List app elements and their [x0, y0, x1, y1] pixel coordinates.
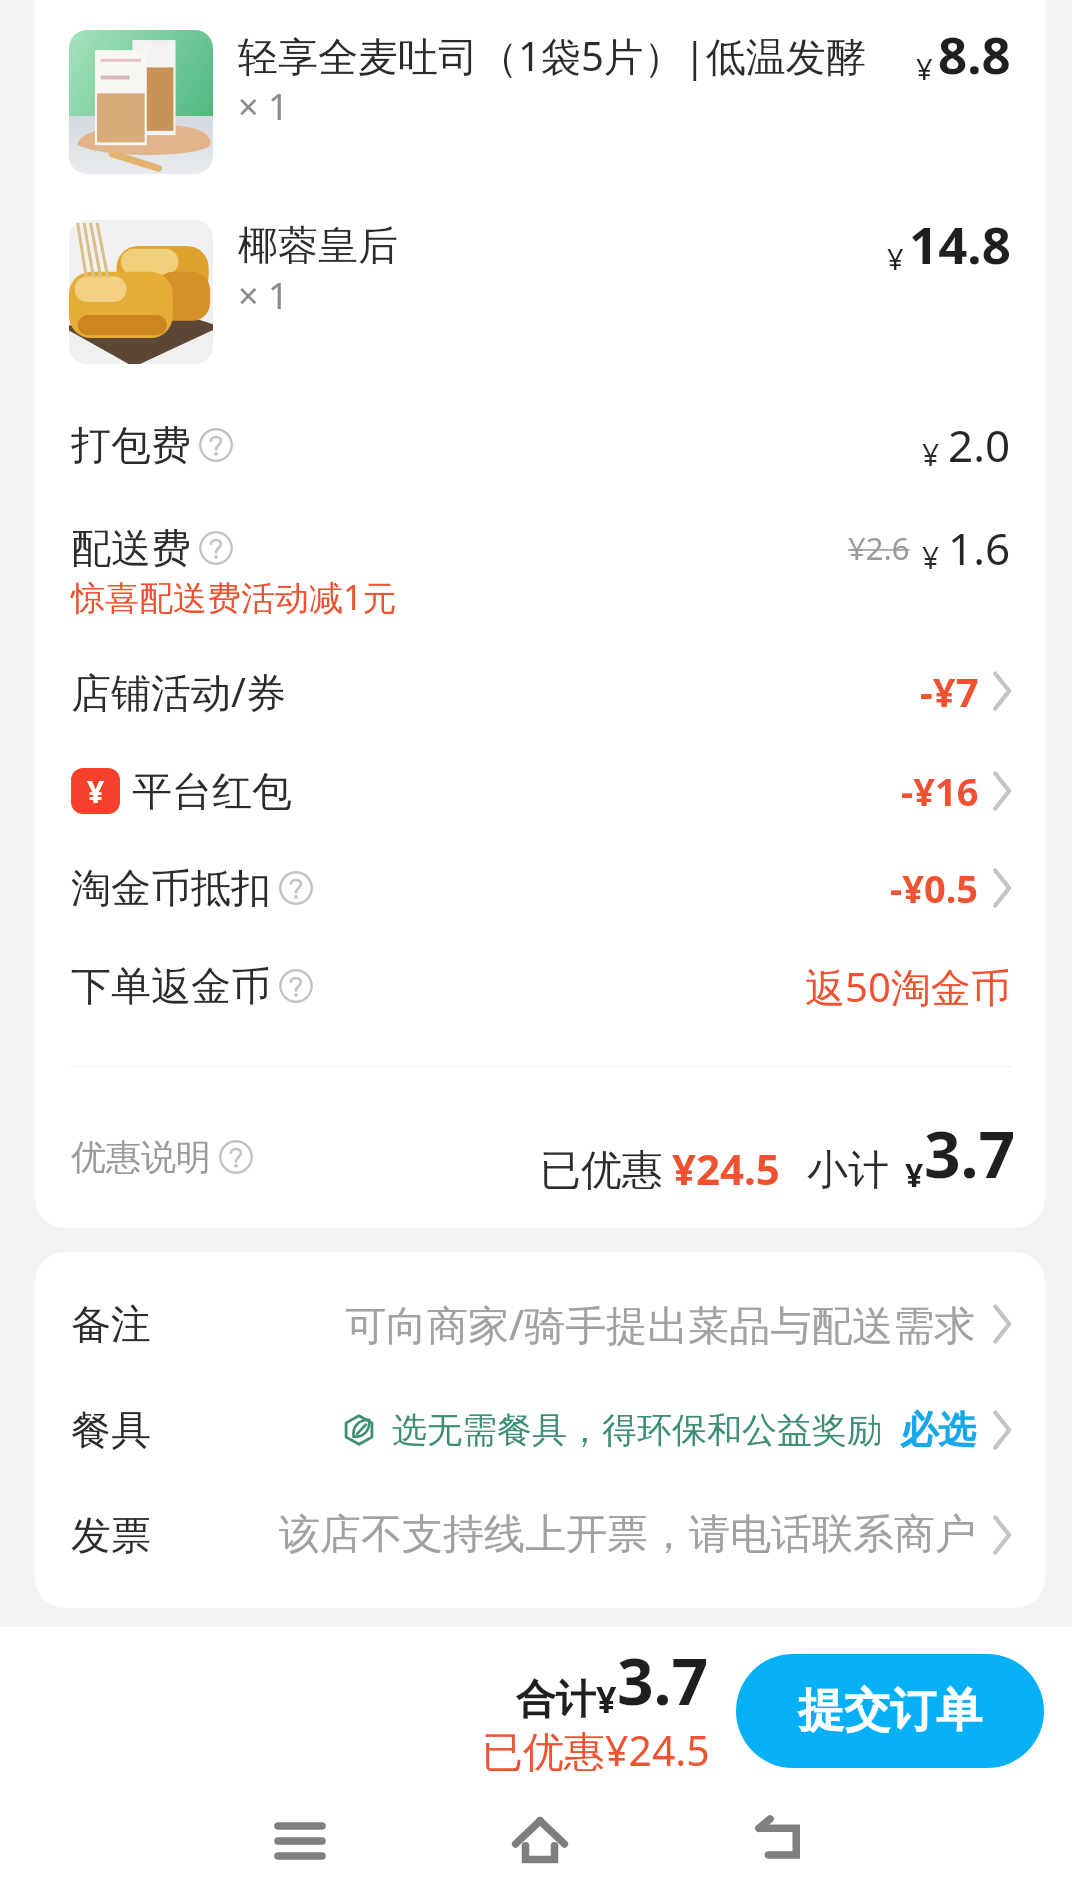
staticText: 淘金币抵扣 [71, 863, 271, 913]
staticText: × 1 [238, 271, 289, 320]
staticText: 1.6 [948, 518, 1011, 578]
button[interactable]: ¥ [35, 741, 1045, 841]
staticText: 餐具 [71, 1405, 151, 1455]
staticText: ¥ [87, 771, 105, 812]
staticText: 2.0 [948, 415, 1011, 475]
staticText: 3.7 [924, 1110, 1016, 1197]
staticText: 椰蓉皇后 [238, 220, 398, 270]
button[interactable]: 发票 [35, 1485, 1045, 1585]
staticText: ¥ [922, 537, 940, 578]
staticText: 店铺活动/券 [71, 664, 286, 719]
staticText: × 1 [238, 82, 289, 131]
staticText: 选无需餐具，得环保和公益奖励 [392, 1408, 882, 1452]
staticText: 已优惠¥24.5 [482, 1722, 710, 1778]
staticText: ¥24.5 [672, 1140, 780, 1197]
staticText: 惊喜配送费活动减1元 [71, 574, 397, 620]
staticText: ¥ [887, 239, 904, 278]
button[interactable]: 提交订单 [736, 1654, 1044, 1768]
button[interactable]: 备注 [35, 1274, 1045, 1374]
button[interactable]: Help [279, 871, 313, 905]
button[interactable]: Recent apps [240, 1786, 360, 1896]
staticText: -¥0.5 [890, 862, 979, 914]
staticText: ¥ [916, 49, 933, 88]
button[interactable]: 餐具 [35, 1380, 1045, 1480]
staticText: 优惠说明 [71, 1135, 211, 1179]
staticText: 备注 [71, 1299, 151, 1349]
button[interactable]: 淘金币抵扣 [35, 838, 1045, 938]
button[interactable]: Home [480, 1786, 600, 1896]
staticText: 该店不支持线上开票，请电话联系商户 [279, 1509, 976, 1561]
button[interactable]: Back [720, 1786, 840, 1896]
button[interactable]: Help [199, 531, 233, 565]
staticText: 下单返金币 [71, 961, 271, 1011]
button[interactable]: Help [199, 428, 233, 462]
staticText: 小计 [807, 1145, 889, 1197]
staticText: 已优惠 [540, 1145, 663, 1197]
staticText: 提交订单 [798, 1682, 982, 1740]
staticText: 可向商家/骑手提出菜品与配送需求 [345, 1296, 976, 1352]
staticText: 14.8 [909, 209, 1011, 278]
staticText: 8.8 [938, 19, 1011, 88]
button[interactable]: 店铺活动/券 [35, 641, 1045, 741]
staticText: 打包费 [71, 420, 191, 470]
button[interactable]: 轻享全麦吐司（1袋5片）|低温发酵 [35, 16, 1045, 188]
button[interactable]: Help [219, 1140, 253, 1174]
button[interactable]: 椰蓉皇后 [35, 206, 1045, 378]
staticText: ¥ [905, 1153, 924, 1197]
staticText: 发票 [71, 1510, 151, 1560]
staticText: 轻享全麦吐司（1袋5片）|低温发酵 [238, 28, 866, 83]
staticText: 3.7 [617, 1637, 709, 1724]
staticText: -¥16 [901, 765, 979, 817]
staticText: 返50淘金币 [805, 959, 1011, 1014]
staticText: ¥ [596, 1675, 617, 1724]
button[interactable]: Help [279, 969, 313, 1003]
staticText: ¥ [922, 434, 940, 475]
staticText: 配送费 [71, 523, 191, 573]
staticText: 合计 [516, 1674, 596, 1724]
staticText: 必选 [900, 1406, 976, 1454]
staticText: 平台红包 [132, 766, 292, 816]
staticText: -¥7 [920, 664, 979, 718]
staticText: ¥2.6 [848, 527, 910, 569]
